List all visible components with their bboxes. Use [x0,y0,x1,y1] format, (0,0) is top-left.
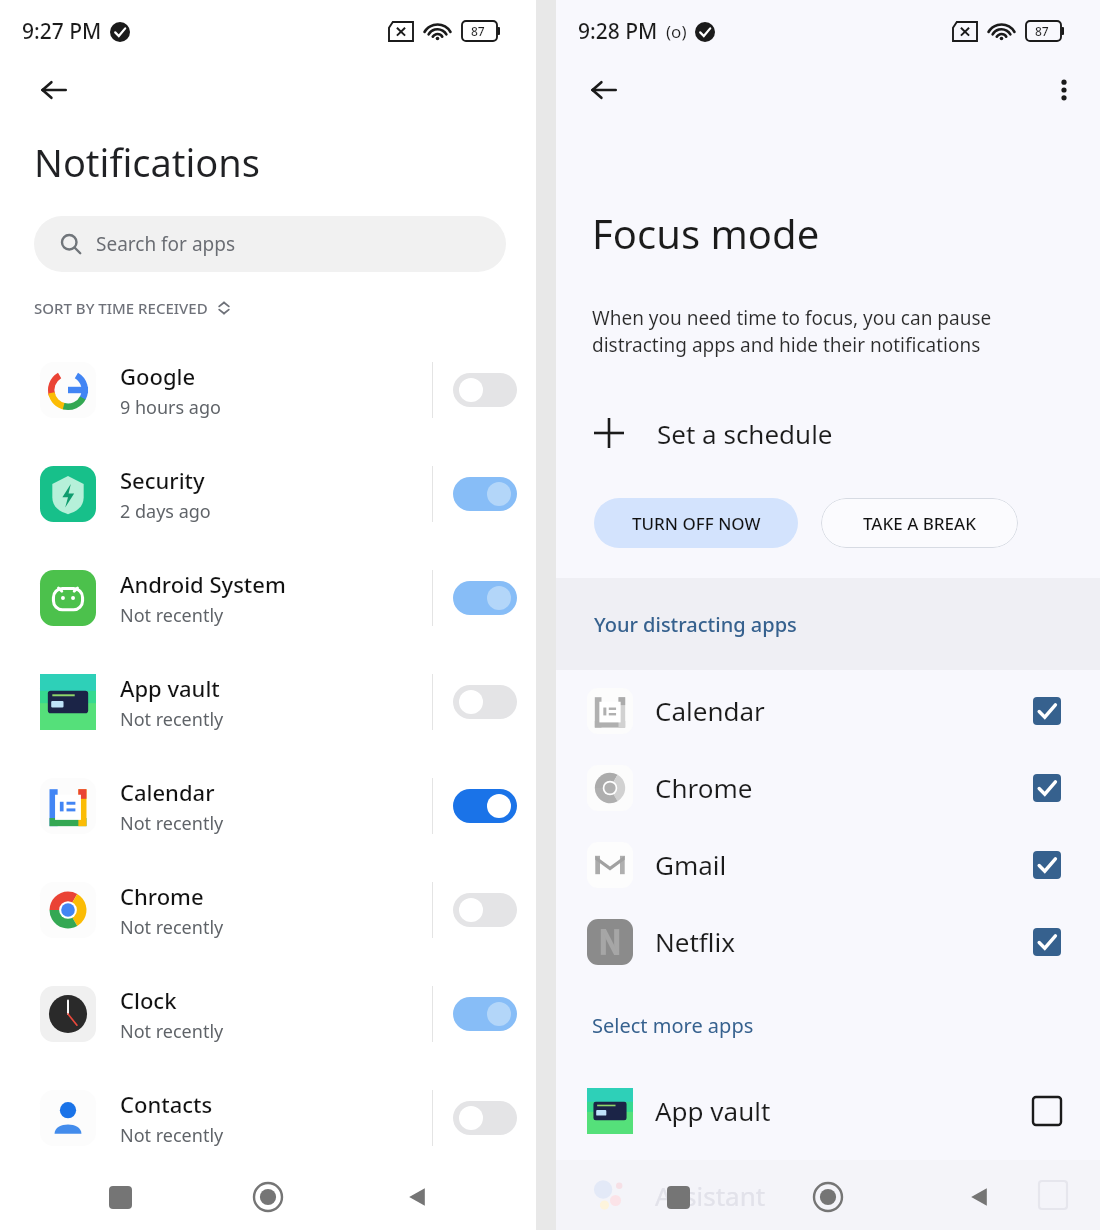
staticText: Search for apps [96,231,236,257]
staticText: Not recently [120,603,224,628]
button[interactable]: Recents [649,1168,707,1226]
button[interactable]: Calendar [0,768,536,844]
staticText: 9:28 PM [578,17,658,46]
staticText: Not recently [120,707,224,732]
staticText: Chrome [655,770,1027,805]
button[interactable]: Back [578,64,630,116]
staticText: Assistant [655,1178,1039,1213]
staticText: Focus mode [592,206,820,260]
button[interactable]: Home [799,1168,857,1226]
button[interactable]: Security [0,456,536,532]
staticText: Not recently [120,811,224,836]
staticText: Not recently [120,1019,224,1044]
button[interactable]: SORT BY TIME RECEIVED [34,290,232,326]
staticText: Contacts [120,1089,213,1119]
button[interactable]: TAKE A BREAK [821,498,1018,548]
button[interactable]: Chrome [556,749,1100,826]
staticText: App vault [655,1093,1027,1128]
button[interactable]: More options [1038,64,1090,116]
button[interactable]: TURN OFF NOW [594,498,798,548]
staticText: Calendar [120,777,215,807]
staticText: (o) [666,20,687,43]
button[interactable] [433,770,536,842]
button[interactable]: Toggle app [1027,1091,1067,1131]
staticText: Your distracting apps [594,611,797,638]
staticText: Notifications [34,136,261,188]
staticText: 2 days ago [120,499,211,524]
button[interactable]: Select more apps [592,1012,754,1039]
staticText: Clock [120,985,177,1015]
button[interactable]: Home [239,1168,297,1226]
staticText: Google [120,361,196,391]
button[interactable]: Toggle app [1027,845,1067,885]
staticText: Not recently [120,915,224,940]
button[interactable]: Netflix [556,903,1100,980]
button[interactable]: Back [28,64,80,116]
button[interactable]: Set a schedule [576,400,1076,466]
staticText: 87 [471,23,485,39]
button[interactable] [433,666,536,738]
button[interactable] [433,354,536,426]
button[interactable]: Contacts [0,1080,536,1156]
button[interactable] [433,874,536,946]
button[interactable] [433,458,536,530]
staticText: Netflix [655,924,1027,959]
button[interactable] [433,562,536,634]
button[interactable]: App vault [0,664,536,740]
staticText: Calendar [655,693,1027,728]
button[interactable]: Search for apps [34,216,506,272]
staticText: Security [120,465,205,495]
staticText: Chrome [120,881,204,911]
staticText: When you need time to focus, you can pau… [592,305,1070,358]
button[interactable]: Toggle app [1027,768,1067,808]
staticText: App vault [120,673,220,703]
button[interactable]: Recents [91,1168,149,1226]
staticText: Not recently [120,1123,224,1148]
button[interactable]: Gmail [556,826,1100,903]
staticText: 87 [1035,23,1049,39]
button[interactable]: Back [950,1168,1008,1226]
staticText: Android System [120,569,286,599]
button[interactable]: Back [388,1168,446,1226]
staticText: TAKE A BREAK [863,512,976,535]
staticText: SORT BY TIME RECEIVED [34,298,208,318]
staticText: Gmail [655,847,1027,882]
button[interactable]: Clock [0,976,536,1052]
button[interactable]: Calendar [556,672,1100,749]
button[interactable]: Toggle app [1027,691,1067,731]
button[interactable]: Chrome [0,872,536,948]
staticText: Set a schedule [657,416,833,451]
staticText: TURN OFF NOW [632,512,761,535]
button[interactable]: App vault [556,1072,1100,1149]
staticText: 9 hours ago [120,395,221,420]
button[interactable]: Android System [0,560,536,636]
button[interactable]: Google [0,352,536,428]
button[interactable] [433,978,536,1050]
staticText: 9:27 PM [22,17,102,46]
button[interactable]: Toggle app [1027,922,1067,962]
button[interactable] [433,1082,536,1154]
